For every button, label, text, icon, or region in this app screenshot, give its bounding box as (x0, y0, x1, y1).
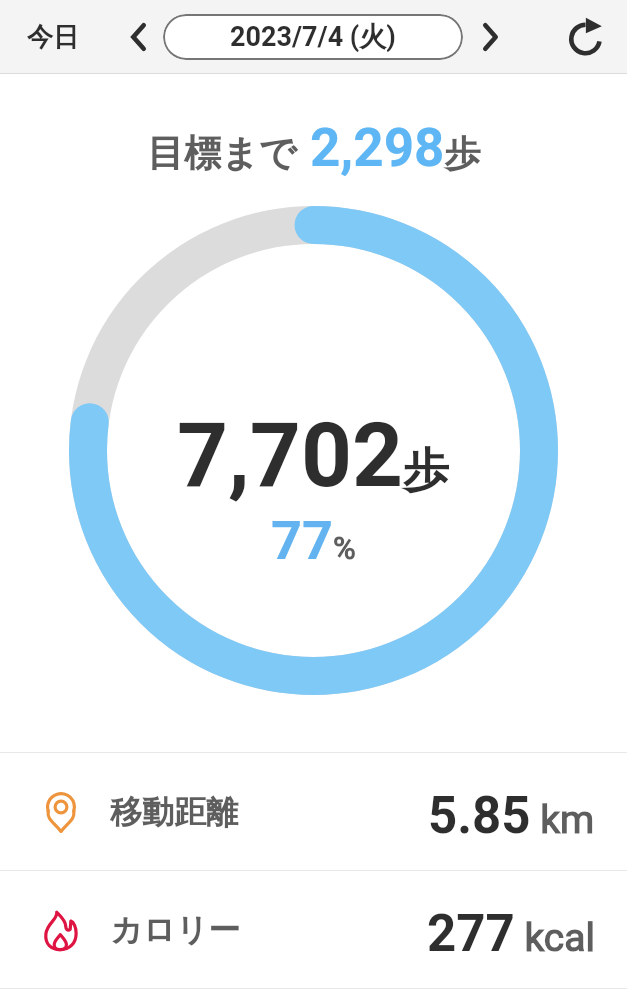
button[interactable]: 今日 (0, 0, 106, 74)
button[interactable]: カロリー (0, 871, 627, 988)
staticText: カロリー (110, 910, 241, 950)
button[interactable]: Previous day (110, 0, 166, 74)
button[interactable]: Next day (462, 0, 518, 74)
staticText: 2023/7/4 (火) (230, 20, 396, 54)
staticText: 277 kcal (427, 904, 595, 964)
staticText: 7,702歩 (177, 403, 450, 507)
staticText: 目標まで 2,298歩 (147, 117, 481, 179)
staticText: 5.85 km (428, 786, 595, 846)
staticText: 77% (271, 509, 356, 572)
button[interactable]: 移動距離 (0, 753, 627, 870)
staticText: 今日 (27, 21, 79, 54)
staticText: 移動距離 (110, 792, 238, 832)
button[interactable]: 2023/7/4 (火) (163, 14, 463, 60)
button[interactable]: Refresh (530, 0, 627, 74)
